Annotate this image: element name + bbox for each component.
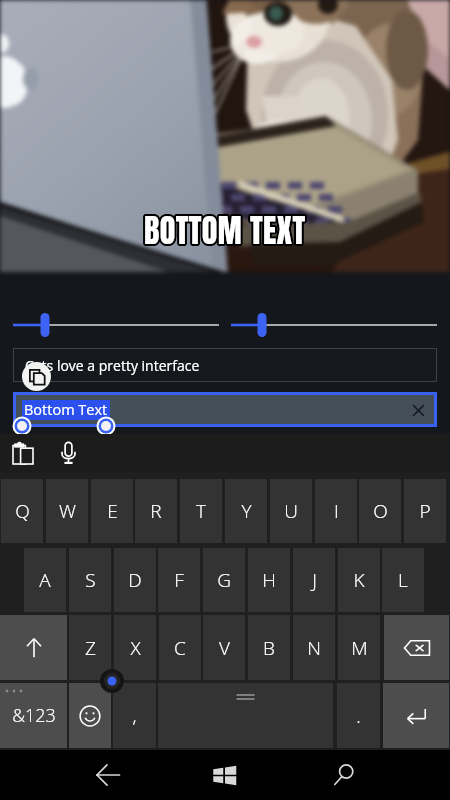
button[interactable]: U [270,479,312,543]
staticText: I [334,498,339,524]
staticText: B [263,635,275,661]
button[interactable]: Cats love a pretty interface [13,348,437,382]
staticText: , [132,703,137,729]
staticText: U [284,498,298,524]
staticText: BOTTOM TEXT [146,206,308,254]
button[interactable]: Start [199,750,249,800]
staticText: L [398,567,408,593]
button[interactable]: L [382,548,424,612]
staticText: Z [85,635,96,661]
button[interactable]: space [158,683,333,748]
button[interactable]: W [46,479,88,543]
button[interactable]: Bottom Text [16,395,434,424]
staticText: A [39,567,51,593]
button[interactable]: A [24,548,66,612]
button[interactable]: , [113,683,156,748]
staticText: BOTTOM TEXT [142,207,304,255]
button[interactable]: P [404,479,446,543]
staticText: Y [241,498,252,524]
button[interactable]: Adjust [0,312,450,338]
button[interactable]: &123 [0,683,67,748]
button[interactable]: Search [319,750,369,800]
staticText: F [174,567,184,593]
staticText: BOTTOM TEXT [145,208,307,256]
staticText: BOTTOM TEXT [142,206,304,254]
button[interactable]: J [293,548,335,612]
button[interactable]: Copy [22,362,51,391]
staticText: G [217,567,231,593]
button[interactable]: Y [225,479,267,543]
staticText: R [150,498,162,524]
button[interactable]: X [114,615,156,680]
button[interactable]: H [248,548,290,612]
button[interactable]: Z [69,615,111,680]
button[interactable]: emoji [69,683,111,748]
button[interactable]: V [203,615,245,680]
button[interactable]: M [338,615,380,680]
staticText: X [130,635,141,661]
button[interactable]: B [248,615,290,680]
staticText: BOTTOM TEXT [143,208,305,256]
button[interactable]: C [159,615,201,680]
staticText: J [312,567,317,593]
button[interactable]: K [338,548,380,612]
button[interactable]: Voice input [50,434,86,472]
button[interactable]: N [293,615,335,680]
button[interactable]: Q [1,479,43,543]
staticText: BOTTOM TEXT [142,205,304,253]
staticText: N [307,635,321,661]
staticText: BOTTOM TEXT [145,204,307,252]
staticText: W [59,498,76,524]
button[interactable]: O [359,479,401,543]
staticText: O [373,498,388,524]
button[interactable]: S [69,548,111,612]
staticText: H [262,567,276,593]
button[interactable]: G [203,548,245,612]
staticText: BOTTOM TEXT [146,205,308,253]
staticText: Q [15,498,30,524]
button[interactable]: shift [0,615,67,680]
button[interactable]: Adjust [0,312,450,338]
staticText: P [419,498,431,524]
staticText: Cats love a pretty interface [25,356,200,375]
button[interactable]: Back [83,750,133,800]
staticText: BOTTOM TEXT [144,206,306,254]
button[interactable]: R [135,479,177,543]
button[interactable]: D [114,548,156,612]
button[interactable]: Clear text [409,401,427,419]
staticText: BOTTOM TEXT [144,204,306,252]
button[interactable]: F [158,548,200,612]
button[interactable]: backspace [384,615,449,680]
staticText: S [85,567,96,593]
staticText: . [356,703,361,729]
staticText: &123 [12,703,56,728]
button[interactable]: I [315,479,357,543]
staticText: E [107,498,118,524]
button[interactable]: . [337,683,380,748]
staticText: BOTTOM TEXT [146,207,308,255]
staticText: M [351,635,368,661]
staticText: C [174,635,186,661]
button[interactable]: Paste [5,434,41,472]
staticText: D [128,567,142,593]
staticText: T [196,498,206,524]
button[interactable]: T [180,479,222,543]
staticText: Bottom Text [24,400,108,420]
staticText: BOTTOM TEXT [144,208,306,256]
button[interactable]: enter [383,683,449,748]
staticText: K [353,567,365,593]
staticText: V [219,635,230,661]
staticText: BOTTOM TEXT [143,204,305,252]
button[interactable]: E [91,479,133,543]
